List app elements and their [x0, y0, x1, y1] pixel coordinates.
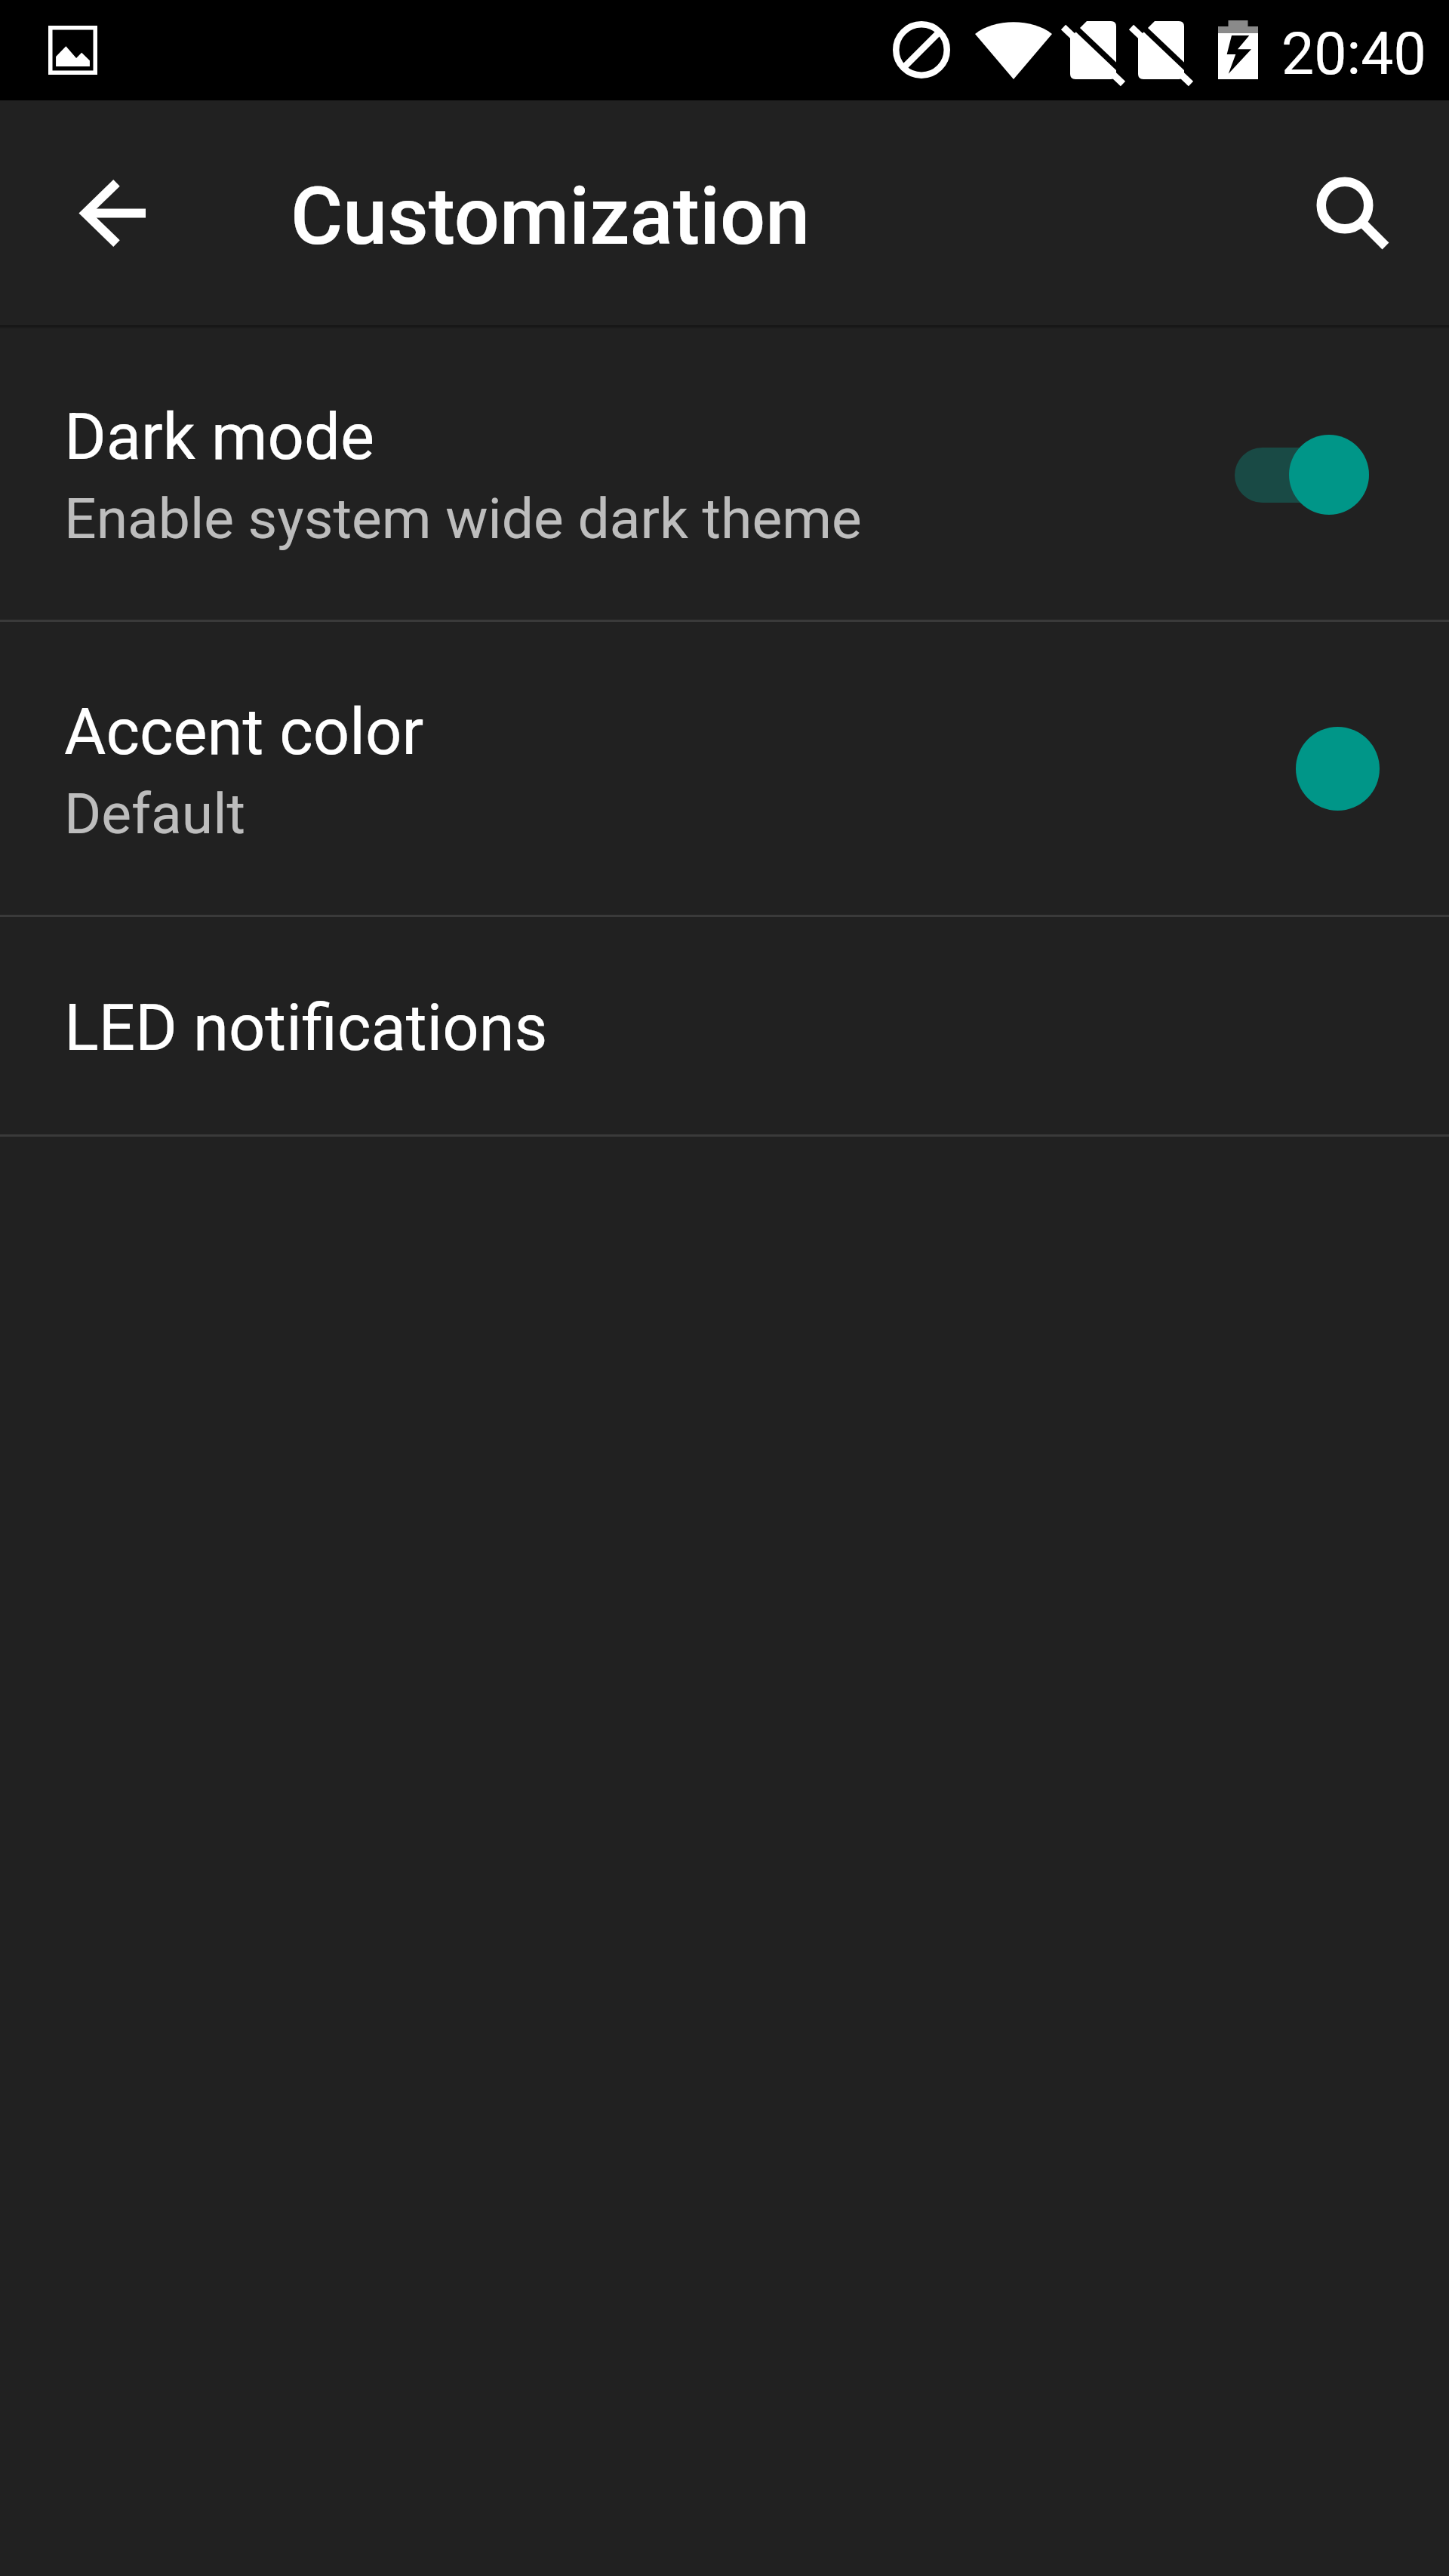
- button[interactable]: Dark mode toggle: [1235, 432, 1369, 517]
- staticText: Customization: [291, 170, 811, 263]
- staticText: 20:40: [1281, 20, 1426, 88]
- staticText: Enable system wide dark theme: [64, 485, 862, 552]
- button[interactable]: Accent color: [0, 622, 1449, 915]
- button[interactable]: Dark mode: [0, 329, 1449, 620]
- staticText: Default: [64, 780, 245, 847]
- button[interactable]: LED notifications: [0, 917, 1449, 1134]
- staticText: Dark mode: [64, 399, 375, 475]
- button[interactable]: Navigate up: [65, 165, 162, 261]
- staticText: Accent color: [64, 694, 424, 770]
- button[interactable]: Search: [1304, 165, 1401, 261]
- staticText: LED notifications: [64, 990, 548, 1066]
